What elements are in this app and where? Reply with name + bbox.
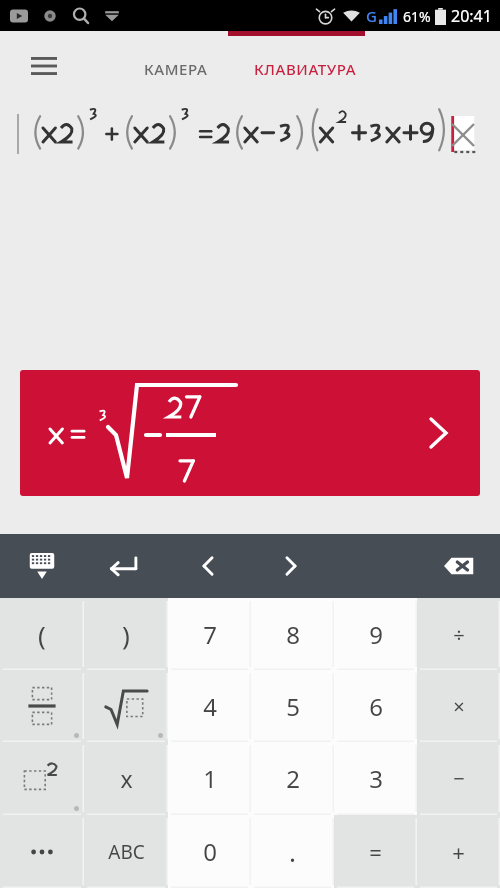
button[interactable]: Next — [249, 534, 332, 598]
button[interactable] — [0, 815, 84, 888]
staticText: + — [452, 837, 465, 867]
staticText: . — [289, 834, 296, 869]
button[interactable] — [0, 742, 84, 815]
button[interactable]: КАМЕРА — [130, 49, 222, 89]
staticText: G — [366, 6, 377, 26]
staticText: 5 — [286, 690, 300, 723]
button[interactable] — [84, 670, 168, 742]
button[interactable]: КЛАВИАТУРА — [240, 49, 371, 89]
staticText: x — [120, 763, 133, 794]
button[interactable]: . — [251, 815, 334, 888]
button[interactable]: ABC — [84, 815, 168, 888]
button[interactable]: × — [417, 670, 500, 742]
staticText: 2 — [286, 762, 300, 795]
button[interactable]: 3 — [334, 742, 417, 815]
staticText: ( — [38, 617, 46, 652]
staticText: 0 — [203, 835, 217, 868]
button[interactable]: 5 — [251, 670, 334, 742]
staticText: ) — [122, 617, 130, 652]
staticText: 7 — [203, 618, 217, 651]
button[interactable]: Enter — [83, 534, 166, 598]
button[interactable]: 6 — [334, 670, 417, 742]
button[interactable]: = — [334, 815, 417, 888]
staticText: ÷ — [453, 621, 465, 648]
button[interactable] — [0, 670, 84, 742]
staticText: 1 — [203, 762, 217, 795]
button[interactable]: Menu — [18, 40, 70, 92]
button[interactable]: 4 — [168, 670, 251, 742]
staticText: 8 — [286, 618, 300, 651]
button[interactable]: 0 — [168, 815, 251, 888]
staticText: 20:41 — [451, 5, 492, 27]
button[interactable]: x — [84, 742, 168, 815]
staticText: − — [453, 765, 465, 792]
button[interactable]: − — [417, 742, 500, 815]
button[interactable]: 9 — [334, 598, 417, 670]
button[interactable]: Previous — [166, 534, 249, 598]
button[interactable]: 8 — [251, 598, 334, 670]
staticText: КЛАВИАТУРА — [254, 59, 357, 79]
button[interactable] — [20, 370, 480, 496]
staticText: 9 — [369, 618, 383, 651]
button[interactable]: Hide keyboard — [0, 534, 83, 598]
button[interactable]: Backspace — [417, 534, 500, 598]
staticText: 4 — [203, 690, 217, 723]
staticText: КАМЕРА — [144, 59, 208, 79]
staticText: ABC — [108, 839, 145, 865]
button[interactable]: Clear — [440, 112, 486, 158]
staticText: 3 — [369, 762, 383, 795]
button[interactable]: ( — [0, 598, 84, 670]
button[interactable]: 1 — [168, 742, 251, 815]
button[interactable]: ) — [84, 598, 168, 670]
staticText: 6 — [369, 690, 383, 723]
button[interactable]: ÷ — [417, 598, 500, 670]
staticText: 61% — [403, 7, 431, 26]
button[interactable]: 2 — [251, 742, 334, 815]
button[interactable]: + — [417, 815, 500, 888]
staticText: × — [453, 693, 465, 720]
staticText: = — [369, 837, 382, 867]
button[interactable]: 7 — [168, 598, 251, 670]
